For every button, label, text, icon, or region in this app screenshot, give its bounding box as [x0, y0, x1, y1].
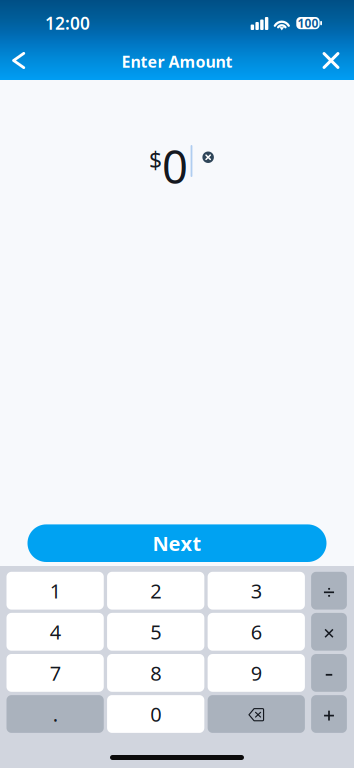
staticText: 2 — [150, 577, 161, 604]
button[interactable]: Clear — [202, 151, 214, 163]
button[interactable]: Plus — [311, 695, 347, 733]
staticText: 4 — [50, 618, 61, 645]
staticText: 5 — [150, 618, 161, 645]
staticText: Enter Amount — [121, 51, 232, 72]
button[interactable]: Multiply — [311, 613, 347, 651]
button[interactable]: 6 — [208, 613, 305, 651]
button[interactable]: 8 — [107, 654, 204, 692]
staticText: $ — [149, 145, 162, 175]
staticText: 8 — [150, 660, 161, 686]
button[interactable]: Next — [27, 524, 326, 562]
staticText: 3 — [251, 577, 262, 604]
button[interactable]: Close — [314, 41, 348, 80]
staticText: Next — [152, 530, 201, 556]
staticText: 100 — [297, 15, 318, 31]
button[interactable]: Divide — [311, 572, 347, 610]
button[interactable]: Delete — [208, 695, 305, 733]
button[interactable]: 1 — [6, 572, 104, 610]
staticText: 9 — [251, 660, 262, 686]
button[interactable]: 5 — [107, 613, 204, 651]
button[interactable]: . — [6, 695, 104, 733]
button[interactable]: 9 — [208, 654, 305, 692]
staticText: . — [53, 701, 58, 727]
staticText: 0 — [150, 701, 161, 727]
button[interactable]: 7 — [6, 654, 104, 692]
button[interactable]: 2 — [107, 572, 204, 610]
button[interactable]: 4 — [6, 613, 104, 651]
button[interactable]: Back — [0, 41, 38, 80]
staticText: 1 — [50, 577, 61, 604]
staticText: 6 — [251, 618, 262, 645]
button[interactable]: 0 — [107, 695, 204, 733]
button[interactable]: Minus — [311, 654, 347, 692]
staticText: 0 — [162, 136, 188, 196]
staticText: 12:00 — [45, 11, 90, 34]
button[interactable]: 3 — [208, 572, 305, 610]
staticText: 7 — [50, 660, 61, 686]
